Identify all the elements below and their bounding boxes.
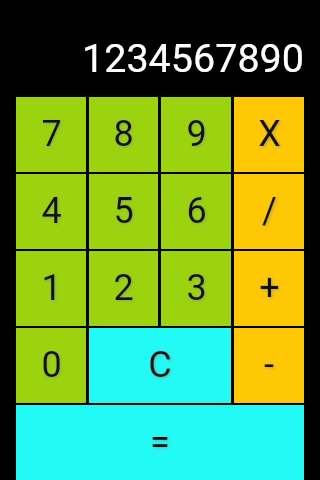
staticText: 3 — [186, 267, 207, 309]
staticText: / — [262, 190, 277, 232]
button[interactable]: 9 — [161, 97, 231, 172]
staticText: 1234567890 — [82, 35, 304, 81]
button[interactable]: 1 — [16, 251, 86, 326]
staticText: 4 — [41, 190, 62, 232]
staticText: 5 — [113, 190, 134, 232]
staticText: = — [150, 421, 170, 463]
staticText: C — [148, 344, 172, 386]
button[interactable]: - — [234, 328, 304, 403]
staticText: X — [258, 113, 281, 155]
button[interactable]: 2 — [89, 251, 158, 326]
staticText: + — [259, 267, 280, 309]
staticText: 7 — [41, 113, 62, 155]
button[interactable]: / — [234, 174, 304, 249]
button[interactable]: 4 — [16, 174, 86, 249]
button[interactable]: 8 — [89, 97, 158, 172]
staticText: 0 — [41, 344, 62, 386]
staticText: 8 — [113, 113, 134, 155]
staticText: 6 — [186, 190, 207, 232]
staticText: 2 — [113, 267, 134, 309]
staticText: 9 — [186, 113, 207, 155]
button[interactable]: C — [89, 328, 231, 403]
button[interactable]: 6 — [161, 174, 231, 249]
button[interactable]: 7 — [16, 97, 86, 172]
button[interactable]: 3 — [161, 251, 231, 326]
staticText: 1 — [41, 267, 62, 309]
button[interactable]: 5 — [89, 174, 158, 249]
button[interactable]: X — [234, 97, 304, 172]
staticText: - — [264, 344, 274, 386]
button[interactable]: 0 — [16, 328, 86, 403]
button[interactable]: = — [16, 405, 304, 480]
button[interactable]: + — [234, 251, 304, 326]
